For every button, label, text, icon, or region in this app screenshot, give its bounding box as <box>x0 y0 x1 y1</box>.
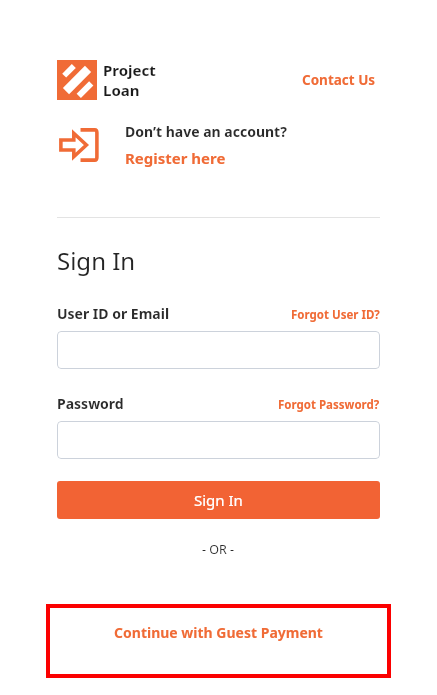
staticText: Sign In <box>57 244 136 277</box>
staticText: Sign In <box>194 490 243 510</box>
staticText: Project <box>103 60 156 80</box>
button[interactable]: Register <box>57 124 99 166</box>
staticText: Don’t have an account? <box>125 122 287 141</box>
staticText: Loan <box>103 80 140 100</box>
staticText: Continue with Guest Payment <box>114 623 323 642</box>
staticText: Register here <box>125 148 226 168</box>
staticText: Forgot User ID? <box>291 307 380 323</box>
staticText: Contact Us <box>302 71 376 89</box>
staticText: Password <box>57 394 124 413</box>
button[interactable]: Contact Us <box>298 67 380 93</box>
staticText: Forgot Password? <box>278 397 380 413</box>
button[interactable] <box>57 331 380 369</box>
staticText: - OR - <box>202 541 235 558</box>
staticText: User ID or Email <box>57 304 170 323</box>
button[interactable]: Forgot User ID? <box>291 307 380 323</box>
button[interactable]: Register here <box>125 148 226 168</box>
button[interactable] <box>57 421 380 459</box>
button[interactable]: Sign In <box>57 481 380 519</box>
button[interactable]: Continue with Guest Payment <box>46 604 391 678</box>
button[interactable]: Forgot Password? <box>278 397 380 413</box>
